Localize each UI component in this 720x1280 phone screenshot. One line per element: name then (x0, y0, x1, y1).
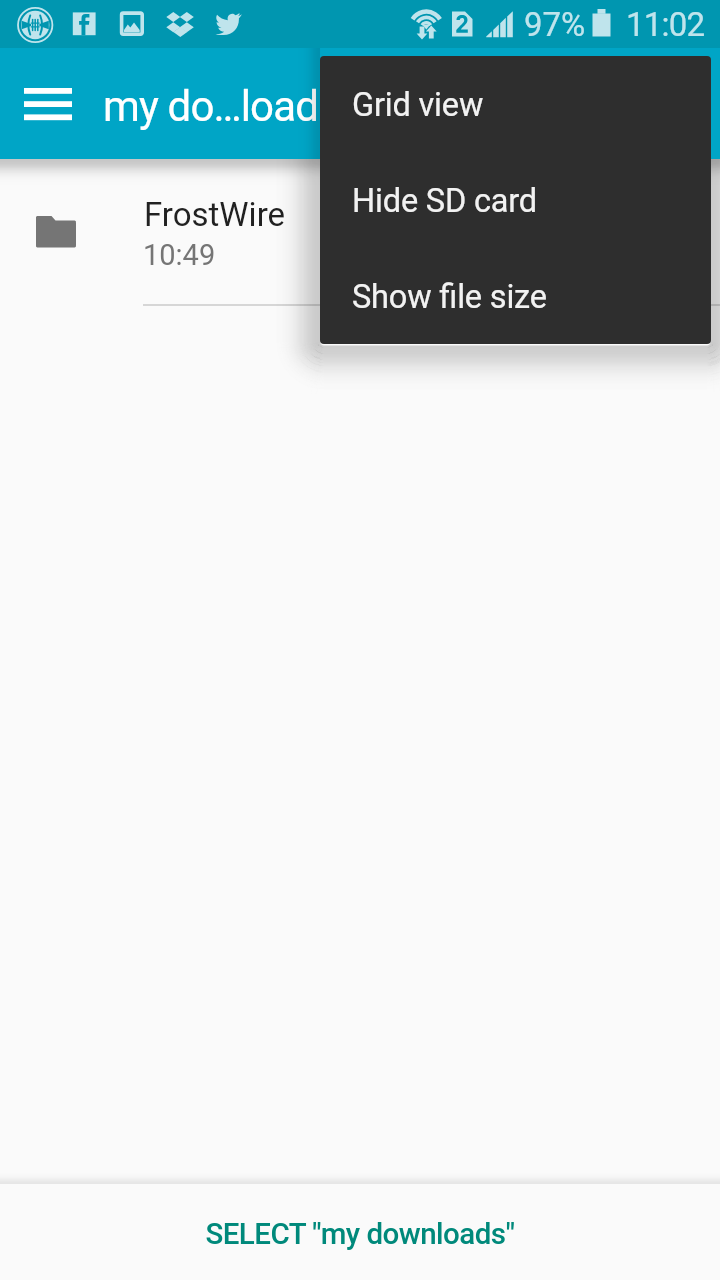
staticText: 10:49 (143, 238, 216, 272)
button[interactable]: Show file size (320, 248, 711, 344)
staticText: 97% (524, 5, 586, 44)
staticText: Grid view (352, 86, 484, 124)
staticText: Hide SD card (352, 182, 537, 220)
staticText: SELECT "my downloads" (205, 1217, 515, 1252)
staticText: 11:02 (626, 5, 705, 44)
staticText: my do…load (103, 82, 319, 131)
button[interactable]: SELECT "my downloads" (0, 1184, 720, 1280)
button[interactable]: Grid view (320, 56, 711, 152)
button[interactable]: FrostWire (0, 159, 720, 304)
staticText: Show file size (352, 278, 547, 316)
staticText: FrostWire (144, 195, 286, 234)
button[interactable]: Hide SD card (320, 152, 711, 248)
button[interactable]: Open navigation drawer (0, 48, 96, 159)
